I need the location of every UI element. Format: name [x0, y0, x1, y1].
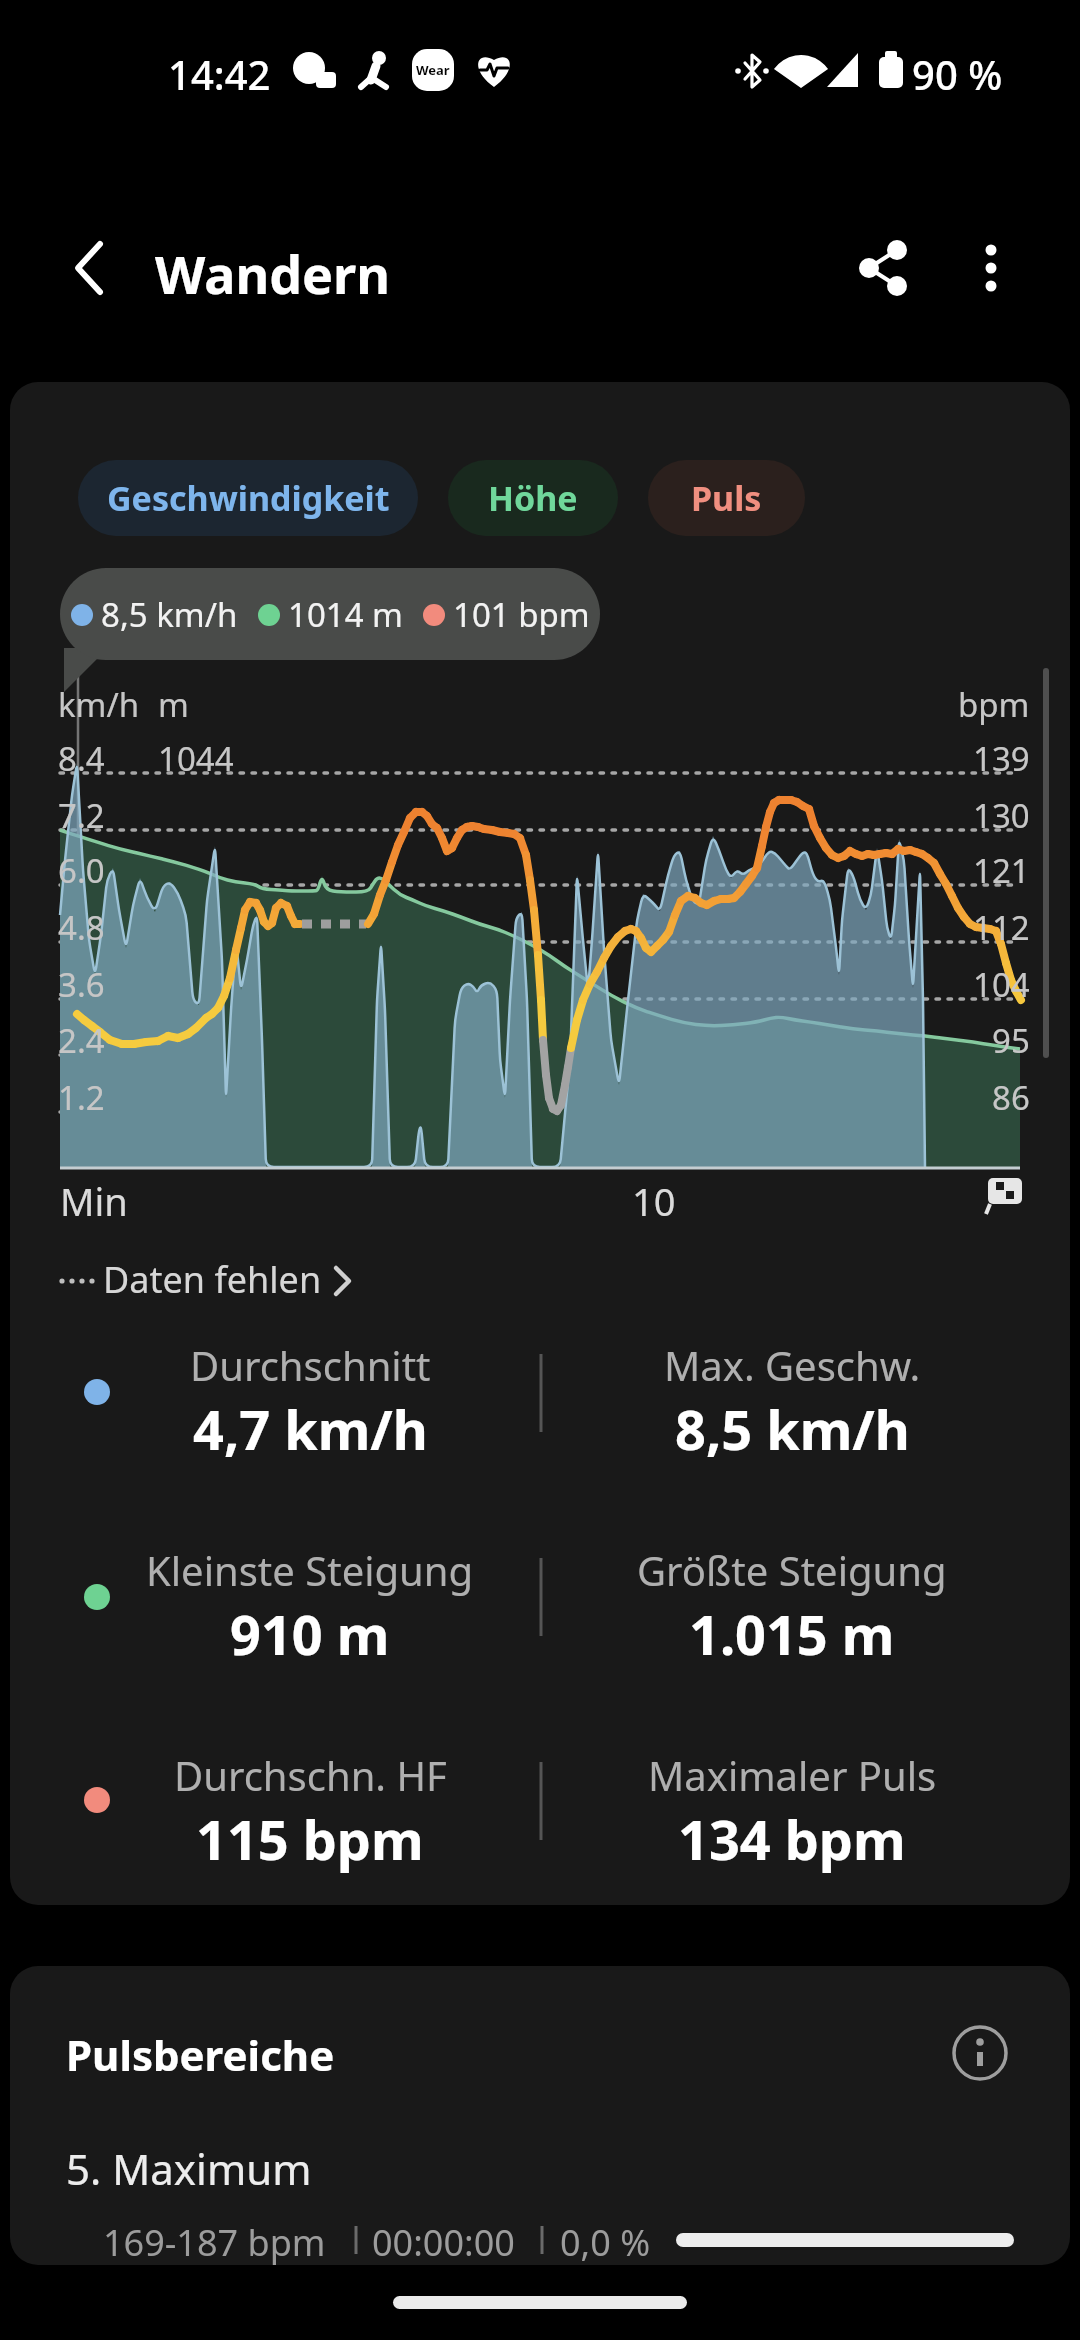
staticText: Geschwindigkeit: [107, 475, 390, 521]
staticText: 4.8: [58, 905, 105, 950]
staticText: bpm: [958, 682, 1030, 727]
staticText: 104: [973, 962, 1030, 1007]
staticText: Durchschnitt: [190, 1338, 431, 1392]
staticText: 130: [973, 793, 1030, 838]
staticText: 1.2: [58, 1075, 105, 1120]
button[interactable]: [940, 2013, 1020, 2093]
staticText: 3.6: [58, 962, 105, 1007]
button[interactable]: [835, 218, 925, 318]
button[interactable]: [40, 218, 140, 318]
staticText: Durchschn. HF: [174, 1748, 447, 1802]
staticText: Größte Steigung: [637, 1543, 947, 1597]
staticText: Max. Geschw.: [664, 1338, 921, 1392]
staticText: 95: [992, 1018, 1030, 1063]
button[interactable]: Höhe: [448, 460, 618, 536]
button[interactable]: Geschwindigkeit: [78, 460, 418, 536]
staticText: 14:42: [168, 47, 271, 101]
staticText: 86: [992, 1075, 1030, 1120]
staticText: 90 %: [912, 47, 1003, 101]
staticText: Daten fehlen: [103, 1255, 322, 1304]
staticText: Höhe: [488, 475, 578, 521]
staticText: Maximaler Puls: [648, 1748, 937, 1802]
staticText: Wandern: [155, 238, 391, 309]
staticText: 10: [632, 1175, 676, 1227]
staticText: 7.2: [58, 793, 105, 838]
button[interactable]: Puls: [648, 460, 805, 536]
staticText: 1044: [158, 736, 234, 781]
staticText: Wear: [416, 61, 450, 79]
staticText: 910 m: [230, 1597, 390, 1669]
button[interactable]: [950, 218, 1030, 318]
staticText: 115 bpm: [196, 1802, 424, 1874]
staticText: 8,5 km/h: [101, 592, 238, 637]
staticText: 8.4: [58, 736, 105, 781]
staticText: km/h: [58, 682, 140, 727]
staticText: 1014 m: [288, 592, 403, 637]
staticText: Kleinste Steigung: [146, 1543, 474, 1597]
staticText: 00:00:00: [372, 2218, 515, 2265]
staticText: 4,7 km/h: [193, 1392, 428, 1464]
staticText: 8,5 km/h: [675, 1392, 910, 1464]
staticText: 121: [973, 848, 1030, 893]
staticText: 1.015 m: [689, 1597, 895, 1669]
button[interactable]: 5. Maximum: [10, 2116, 1070, 2265]
staticText: 169-187 bpm: [103, 2218, 326, 2265]
staticText: Pulsbereiche: [66, 2026, 335, 2083]
staticText: 0,0 %: [560, 2218, 651, 2265]
staticText: 134 bpm: [678, 1802, 906, 1874]
staticText: 5. Maximum: [66, 2140, 312, 2197]
staticText: 2.4: [58, 1018, 105, 1063]
staticText: Min: [60, 1175, 128, 1227]
button[interactable]: Daten fehlen: [60, 1252, 340, 1310]
staticText: 139: [973, 736, 1030, 781]
staticText: 112: [973, 905, 1030, 950]
staticText: 6.0: [58, 848, 105, 893]
staticText: m: [158, 682, 189, 727]
staticText: 101 bpm: [453, 592, 590, 637]
staticText: Puls: [691, 475, 762, 521]
